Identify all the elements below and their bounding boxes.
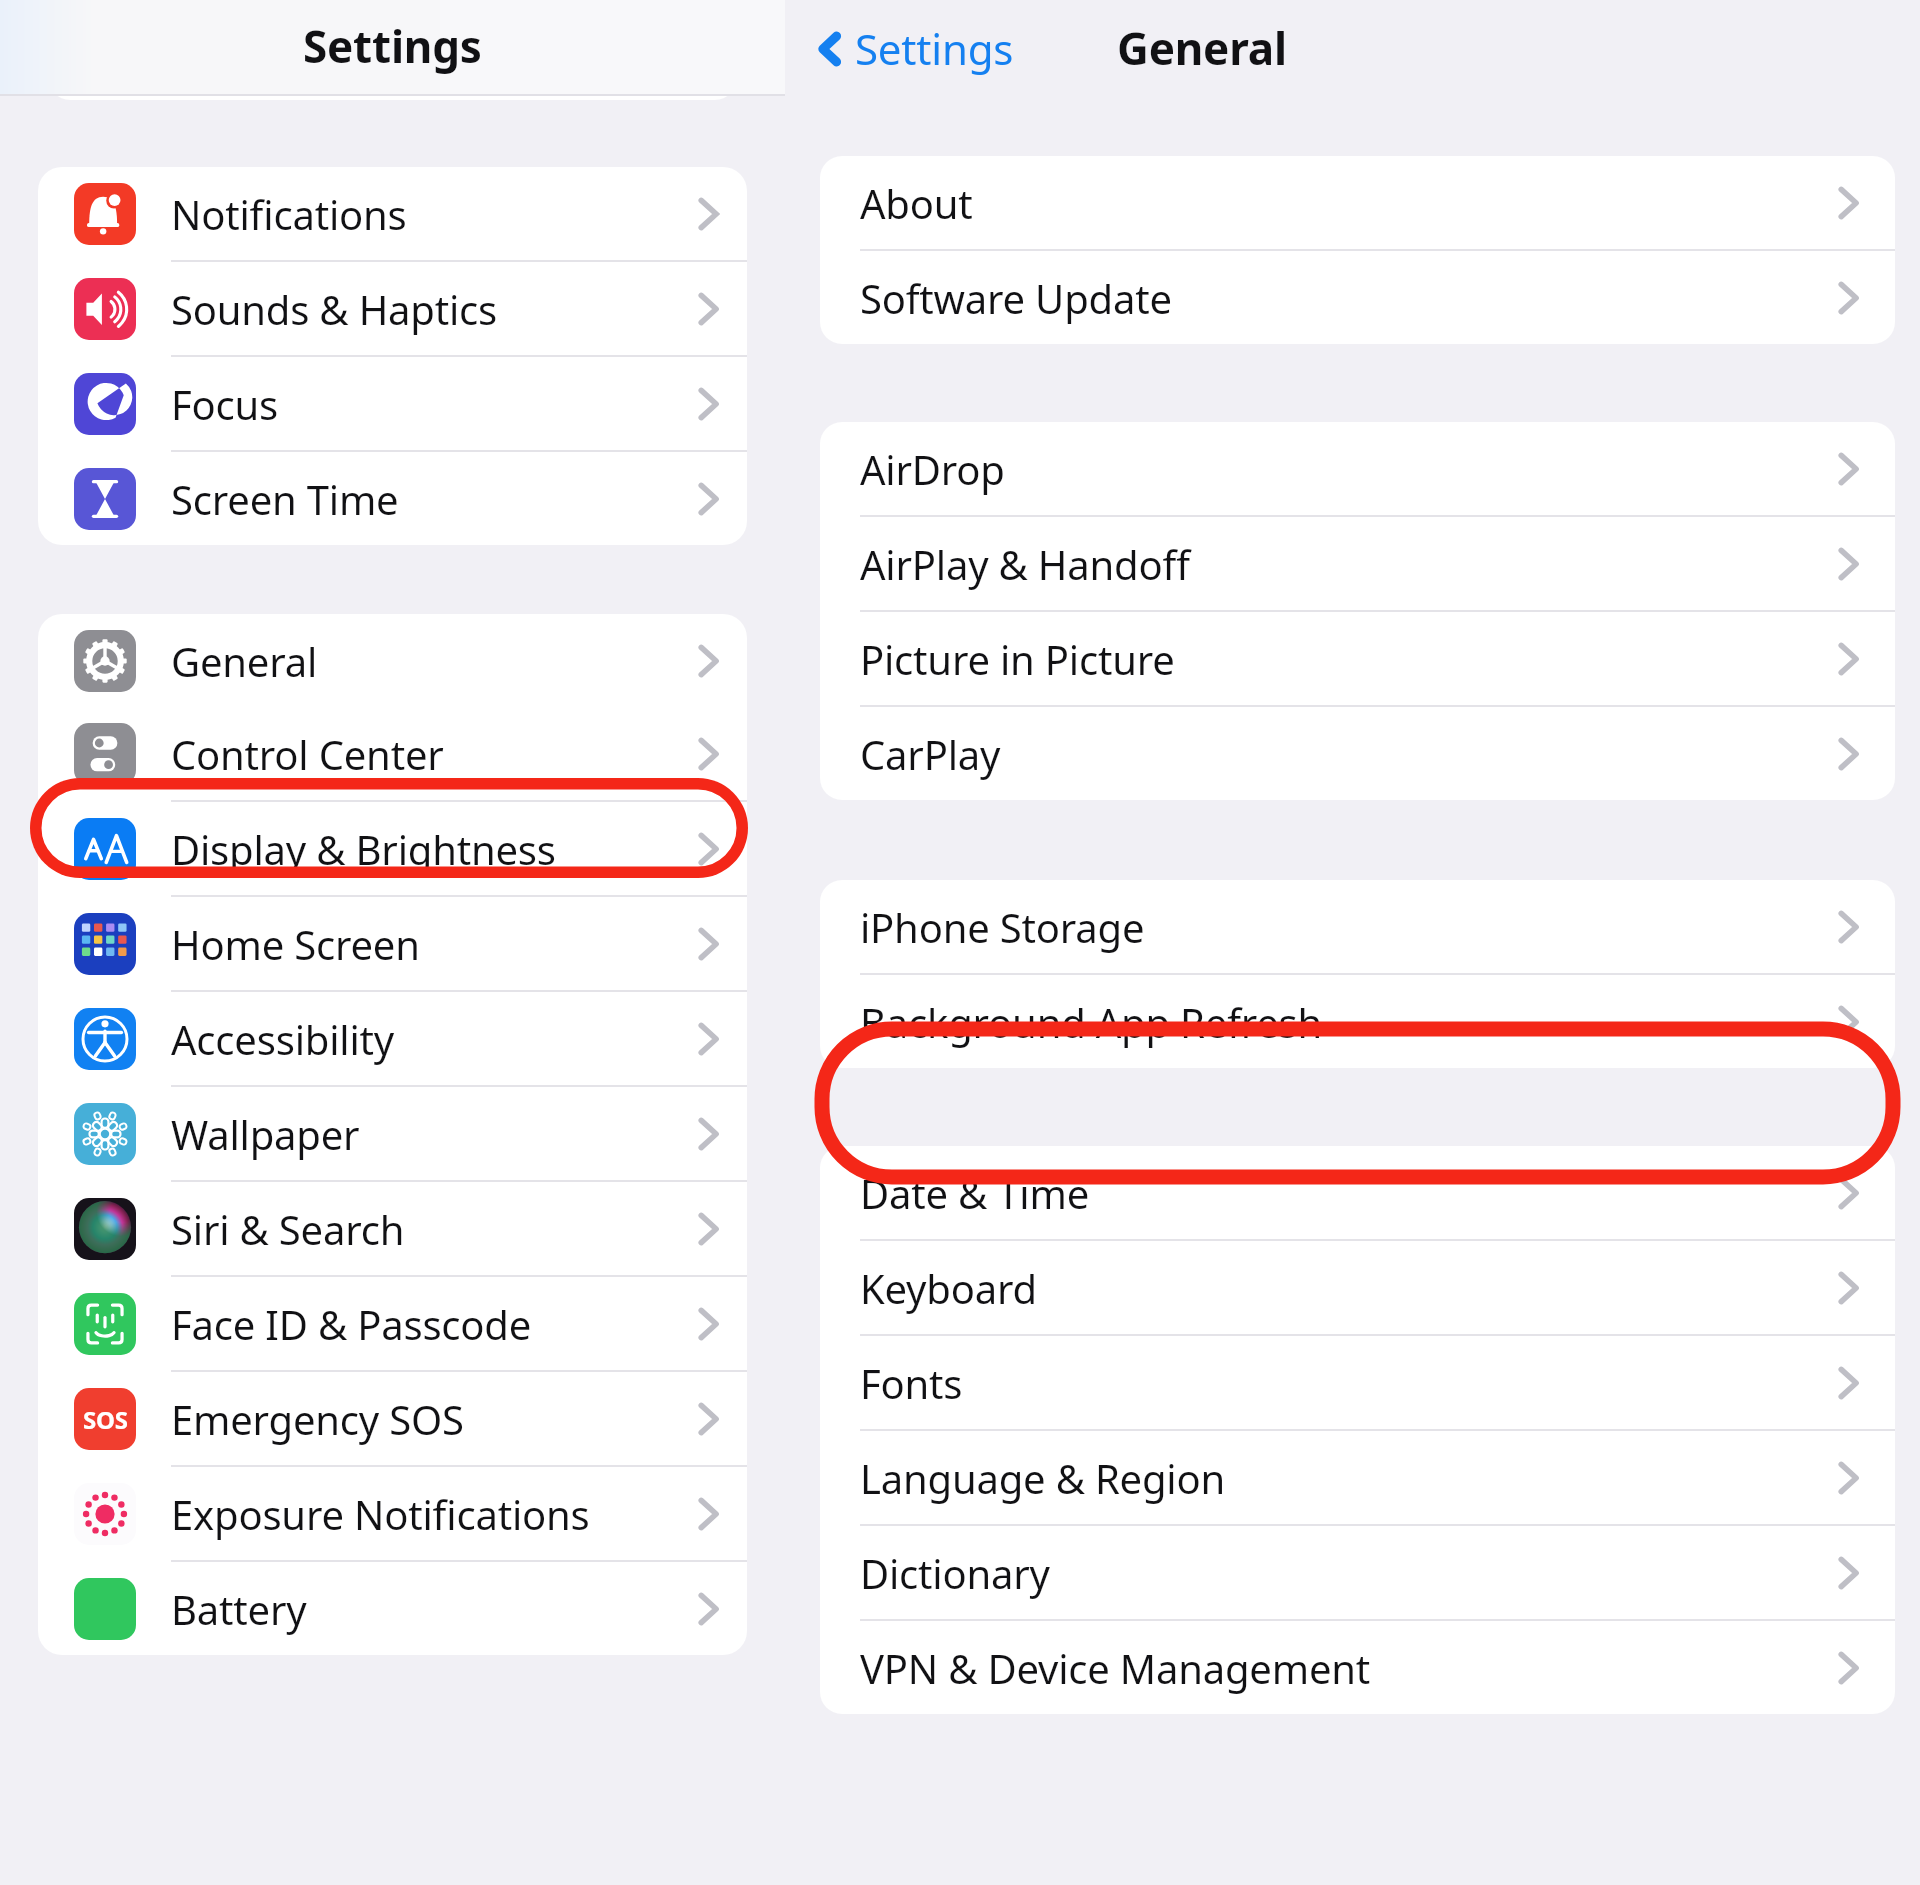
button[interactable]: Focus bbox=[38, 357, 747, 452]
button[interactable]: Siri & Search bbox=[38, 1182, 747, 1277]
button[interactable]: Accessibility bbox=[38, 992, 747, 1087]
staticText: Face ID & Passcode bbox=[171, 1297, 691, 1351]
staticText: Background App Refresh bbox=[860, 995, 1831, 1049]
button[interactable]: CarPlay bbox=[820, 707, 1895, 800]
button[interactable]: General bbox=[38, 614, 747, 707]
button[interactable]: SOS bbox=[38, 1372, 747, 1467]
button[interactable]: Language & Region bbox=[820, 1431, 1895, 1526]
button[interactable]: Control Center bbox=[38, 707, 747, 802]
button[interactable]: Home Screen bbox=[38, 897, 747, 992]
staticText: Accessibility bbox=[171, 1012, 691, 1066]
button[interactable]: Fonts bbox=[820, 1336, 1895, 1431]
staticText: General bbox=[1117, 18, 1287, 78]
button[interactable]: Battery bbox=[38, 1562, 747, 1655]
staticText: Display & Brightness bbox=[171, 822, 691, 876]
button[interactable]: Dictionary bbox=[820, 1526, 1895, 1621]
button[interactable]: Notifications bbox=[38, 167, 747, 262]
staticText: Sounds & Haptics bbox=[171, 282, 691, 336]
staticText: Language & Region bbox=[860, 1451, 1831, 1505]
button[interactable]: Background App Refresh bbox=[820, 975, 1895, 1068]
staticText: CarPlay bbox=[860, 727, 1831, 781]
staticText: Emergency SOS bbox=[171, 1392, 691, 1446]
staticText: Battery bbox=[171, 1582, 691, 1636]
staticText: Keyboard bbox=[860, 1261, 1831, 1315]
staticText: Home Screen bbox=[171, 917, 691, 971]
staticText: Software Update bbox=[860, 271, 1831, 325]
staticText: Exposure Notifications bbox=[171, 1487, 691, 1541]
staticText: SOS bbox=[83, 1403, 128, 1436]
staticText: Control Center bbox=[171, 727, 691, 781]
staticText: Siri & Search bbox=[171, 1202, 691, 1256]
staticText: VPN & Device Management bbox=[860, 1641, 1831, 1695]
button[interactable]: iPhone Storage bbox=[820, 880, 1895, 975]
button[interactable]: Wallpaper bbox=[38, 1087, 747, 1182]
staticText: Notifications bbox=[171, 187, 691, 241]
button[interactable]: AirDrop bbox=[820, 422, 1895, 517]
button[interactable]: AirPlay & Handoff bbox=[820, 517, 1895, 612]
staticText: iPhone Storage bbox=[860, 900, 1831, 954]
button[interactable]: Settings bbox=[807, 12, 1022, 85]
staticText: Settings bbox=[855, 20, 1014, 77]
button[interactable]: Exposure Notifications bbox=[38, 1467, 747, 1562]
staticText: Wallpaper bbox=[171, 1107, 691, 1161]
button[interactable]: Screen Time bbox=[38, 452, 747, 545]
staticText: Picture in Picture bbox=[860, 632, 1831, 686]
staticText: Date & Time bbox=[860, 1166, 1831, 1220]
button[interactable]: Date & Time bbox=[820, 1146, 1895, 1241]
button[interactable]: Sounds & Haptics bbox=[38, 262, 747, 357]
staticText: About bbox=[860, 176, 1831, 230]
button[interactable]: VPN & Device Management bbox=[820, 1621, 1895, 1714]
staticText: General bbox=[171, 634, 691, 688]
button[interactable]: Keyboard bbox=[820, 1241, 1895, 1336]
staticText: Focus bbox=[171, 377, 691, 431]
staticText: Dictionary bbox=[860, 1546, 1831, 1600]
staticText: AirDrop bbox=[860, 442, 1831, 496]
button[interactable]: Display & Brightness bbox=[38, 802, 747, 897]
button[interactable]: About bbox=[820, 156, 1895, 251]
staticText: Screen Time bbox=[171, 472, 691, 526]
button[interactable]: Picture in Picture bbox=[820, 612, 1895, 707]
staticText: AirPlay & Handoff bbox=[860, 537, 1831, 591]
button[interactable]: Software Update bbox=[820, 251, 1895, 344]
staticText: Fonts bbox=[860, 1356, 1831, 1410]
staticText: Settings bbox=[303, 16, 482, 76]
button[interactable]: Face ID & Passcode bbox=[38, 1277, 747, 1372]
